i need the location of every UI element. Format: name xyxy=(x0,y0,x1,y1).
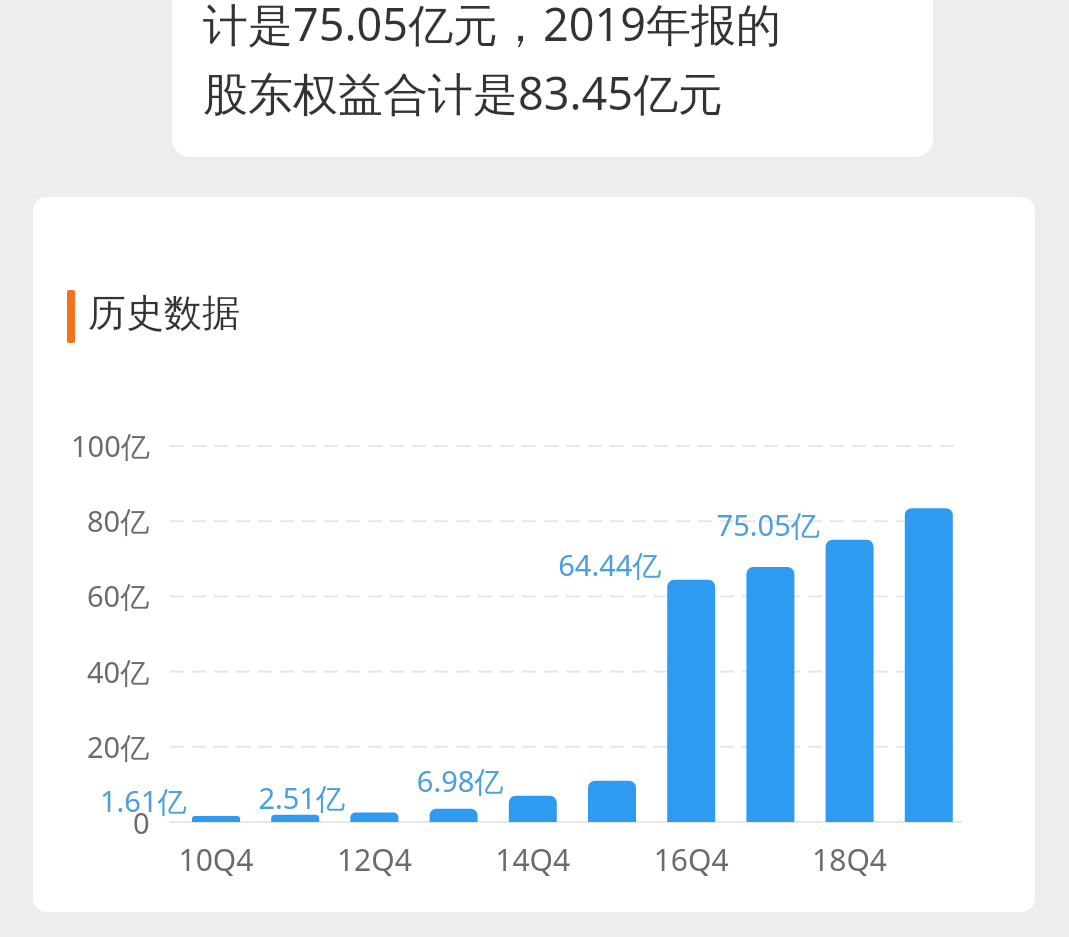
button[interactable]: 历史数据图表 xyxy=(33,197,1035,912)
button[interactable] xyxy=(172,0,933,157)
